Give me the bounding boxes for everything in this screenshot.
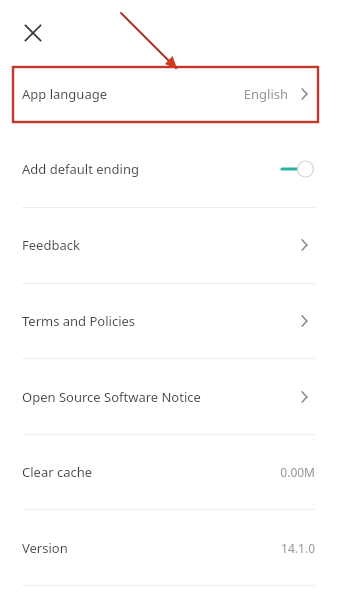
button[interactable]: Close [15,15,51,51]
staticText: Clear cache [22,463,93,481]
staticText: Terms and Policies [22,312,136,330]
staticText: English [243,85,288,103]
staticText: Feedback [22,236,80,254]
button[interactable] [0,284,337,358]
staticText: 0.00M [280,464,315,480]
button[interactable] [0,435,337,509]
button[interactable] [0,510,337,585]
button[interactable] [0,145,337,195]
staticText: Open Source Software Notice [22,388,201,406]
button[interactable] [0,208,337,283]
button[interactable]: Add default ending toggle [278,157,318,181]
staticText: Version [22,539,68,557]
button[interactable] [0,68,337,120]
staticText: 14.1.0 [281,540,315,556]
staticText: Add default ending [22,160,139,178]
button[interactable] [0,359,337,434]
staticText: App language [22,85,108,103]
